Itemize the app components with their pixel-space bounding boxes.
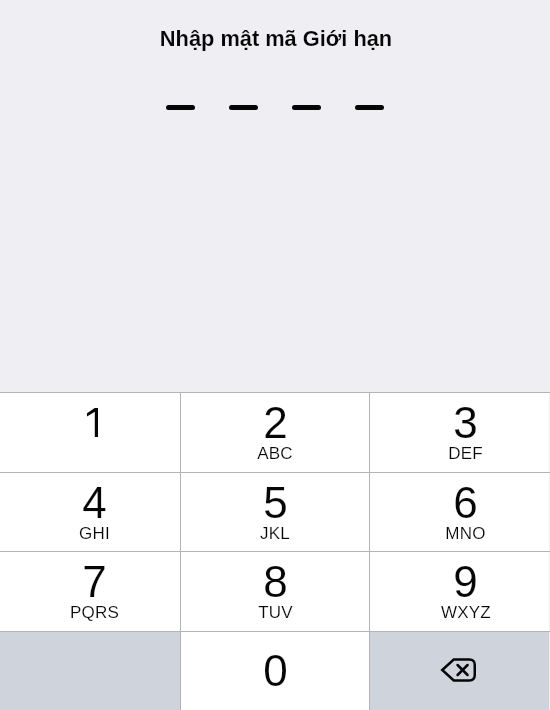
button[interactable]: Delete: [370, 632, 549, 710]
button[interactable]: 5 JKL: [181, 473, 369, 551]
button[interactable]: 9 WXYZ: [370, 552, 549, 631]
staticText: 9: [453, 557, 478, 606]
staticText: 2: [263, 398, 288, 447]
staticText: 5: [263, 478, 288, 527]
staticText: GHI: [79, 524, 110, 543]
button[interactable]: 7 PQRS: [0, 552, 180, 631]
staticText: TUV: [258, 603, 293, 622]
staticText: 0: [263, 646, 288, 695]
staticText: 8: [263, 557, 288, 606]
staticText: WXYZ: [441, 603, 491, 622]
staticText: 7: [82, 557, 107, 606]
staticText: MNO: [445, 524, 486, 543]
staticText: DEF: [448, 444, 483, 463]
button[interactable]: 6 MNO: [370, 473, 549, 551]
staticText: PQRS: [70, 603, 119, 622]
button[interactable]: 2 ABC: [181, 393, 369, 472]
staticText: 6: [453, 478, 478, 527]
staticText: 3: [453, 398, 478, 447]
staticText: 4: [82, 478, 107, 527]
button[interactable]: 4 GHI: [0, 473, 180, 551]
button[interactable]: 8 TUV: [181, 552, 369, 631]
staticText: ABC: [257, 444, 293, 463]
button[interactable]: 3 DEF: [370, 393, 549, 472]
button[interactable]: 1: [0, 393, 180, 472]
button[interactable]: 0: [181, 632, 369, 710]
staticText: Nhập mật mã Giới hạn: [1, 26, 550, 50]
staticText: JKL: [260, 524, 290, 543]
